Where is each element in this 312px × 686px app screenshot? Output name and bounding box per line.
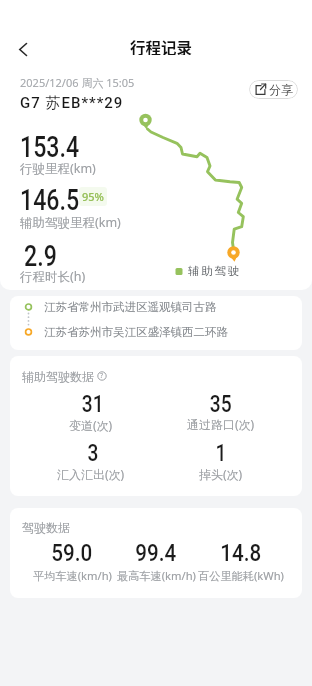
staticText: 35 [210,390,232,418]
staticText: 辅助驾驶 [188,264,242,278]
staticText: 59.0 [51,539,93,567]
staticText: 行驶里程(km) [20,160,96,177]
staticText: G7 苏EB***29 [20,94,124,113]
staticText: 驾驶数据 [22,520,70,535]
staticText: 辅助驾驶数据 [22,369,94,383]
staticText: 百公里能耗(kWh) [198,568,284,583]
staticText: 江苏省常州市武进区遥观镇司古路 [44,300,217,314]
staticText: 14.8 [220,539,262,567]
staticText: 153.4 [20,130,80,160]
staticText: 2.9 [24,239,58,269]
staticText: 31 [82,390,104,418]
staticText: 江苏省苏州市吴江区盛泽镇西二环路 [44,325,228,339]
button[interactable]: 分享 [249,80,298,99]
staticText: 行程记录 [130,36,193,55]
staticText: 通过路口(次) [187,416,255,432]
staticText: 行程时长(h) [20,268,86,285]
staticText: 辅助驾驶里程(km) [20,214,121,231]
staticText: 3 [87,439,99,467]
button[interactable] [12,38,34,60]
staticText: 分享 [269,82,293,97]
staticText: 2025/12/06 周六 15:05 [20,75,135,90]
staticText: 1 [215,439,227,467]
staticText: 95% [82,189,104,204]
staticText: 最高车速(km/h) [117,568,196,583]
staticText: ? [100,371,104,381]
staticText: 平均车速(km/h) [33,568,112,583]
staticText: 99.4 [135,539,177,567]
staticText: 变道(次) [69,417,113,433]
staticText: 汇入汇出(次) [57,466,125,482]
staticText: 掉头(次) [199,466,243,482]
staticText: 146.5 [20,183,80,213]
